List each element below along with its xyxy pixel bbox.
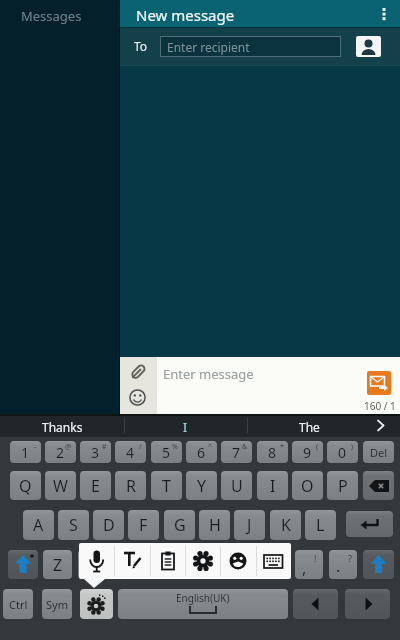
staticText: K (281, 514, 291, 536)
button[interactable] (356, 36, 381, 57)
button[interactable] (88, 550, 106, 573)
button[interactable] (128, 362, 148, 382)
button[interactable]: F (128, 510, 159, 540)
button[interactable]: 3 (80, 441, 111, 463)
button[interactable]: K (270, 510, 301, 540)
staticText: P (338, 475, 348, 497)
button[interactable] (229, 552, 247, 570)
button[interactable]: 5 (151, 441, 182, 463)
button[interactable]: 0 (327, 441, 358, 463)
button[interactable]: Enter recipient (160, 36, 341, 57)
button[interactable] (263, 554, 284, 569)
button[interactable]: 2 (45, 441, 76, 463)
button[interactable]: Y (186, 471, 217, 500)
button[interactable]: Q (10, 471, 41, 500)
button[interactable]: Z (43, 550, 72, 579)
button[interactable]: 4 (115, 441, 146, 463)
staticText: ( (316, 442, 319, 452)
staticText: 4 (126, 443, 135, 462)
button[interactable]: O (292, 471, 323, 500)
button[interactable]: A (23, 510, 54, 540)
button[interactable]: 8 (257, 441, 288, 463)
staticText: 160 / 1 (364, 399, 396, 413)
button[interactable] (376, 420, 386, 432)
staticText: W (53, 475, 68, 497)
button[interactable]: L (305, 510, 336, 540)
button[interactable]: Del (363, 441, 394, 463)
staticText: V (160, 554, 170, 576)
button[interactable]: V (149, 550, 180, 579)
button[interactable]: P (327, 471, 358, 500)
button[interactable]: C (113, 550, 144, 579)
button[interactable] (129, 389, 146, 406)
button[interactable] (293, 589, 338, 619)
button[interactable]: . (329, 550, 357, 579)
staticText: I (183, 419, 188, 435)
staticText: To (134, 38, 148, 54)
staticText: , (302, 557, 307, 579)
button[interactable] (8, 550, 38, 579)
button[interactable]: E (80, 471, 111, 500)
button[interactable]: 9 (292, 441, 323, 463)
staticText: Messages (21, 7, 82, 25)
staticText: 0 (338, 443, 347, 462)
button[interactable] (363, 471, 394, 500)
button[interactable] (123, 551, 143, 571)
button[interactable]: Thanks (0, 416, 124, 437)
staticText: . (336, 555, 341, 577)
staticText: ^ (208, 442, 213, 452)
button[interactable] (346, 511, 393, 537)
button[interactable]: 1 (10, 441, 41, 463)
staticText: R (126, 475, 136, 497)
staticText: J (247, 514, 252, 536)
staticText: O (301, 475, 314, 497)
button[interactable]: I (257, 471, 288, 500)
button[interactable]: T (151, 471, 182, 500)
staticText: F (139, 514, 148, 536)
button[interactable] (367, 371, 391, 395)
button[interactable]: D (93, 510, 124, 540)
button[interactable]: The (247, 416, 371, 437)
staticText: ) (351, 442, 354, 452)
button[interactable]: W (45, 471, 76, 500)
staticText: Y (197, 475, 207, 497)
button[interactable]: 7 (221, 441, 252, 463)
button[interactable] (345, 589, 390, 619)
staticText: 5 (162, 443, 171, 462)
button[interactable] (80, 589, 113, 619)
button[interactable]: Ctrl (3, 589, 33, 619)
staticText: Enter recipient (167, 39, 250, 55)
staticText: * (280, 442, 284, 452)
button[interactable]: Sym (42, 589, 72, 619)
button[interactable]: H (199, 510, 230, 540)
button[interactable] (193, 551, 213, 571)
staticText: U (231, 475, 243, 497)
button[interactable]: 6 (186, 441, 217, 463)
staticText: ? (348, 552, 352, 564)
button[interactable] (380, 8, 388, 21)
button[interactable] (363, 550, 394, 579)
button[interactable]: N (219, 550, 250, 579)
staticText: S (69, 514, 78, 536)
staticText: Z (53, 554, 63, 576)
button[interactable]: J (234, 510, 265, 540)
staticText: 8 (268, 443, 277, 462)
staticText: 1 (21, 443, 30, 462)
staticText: N (228, 554, 241, 576)
staticText: 3 (91, 443, 100, 462)
button[interactable]: R (115, 471, 146, 500)
staticText: 2 (56, 443, 65, 462)
button[interactable]: G (164, 510, 195, 540)
button[interactable]: X (78, 550, 109, 579)
button[interactable]: B (184, 550, 215, 579)
button[interactable]: S (58, 510, 89, 540)
button[interactable]: U (221, 471, 252, 500)
button[interactable]: , (295, 550, 323, 579)
staticText: The (299, 419, 320, 435)
button[interactable]: English(UK) (118, 589, 288, 619)
staticText: English(UK) (176, 591, 230, 605)
button[interactable]: I (124, 416, 247, 437)
button[interactable]: M (255, 550, 286, 579)
staticText: T (162, 475, 171, 497)
button[interactable] (160, 551, 176, 571)
